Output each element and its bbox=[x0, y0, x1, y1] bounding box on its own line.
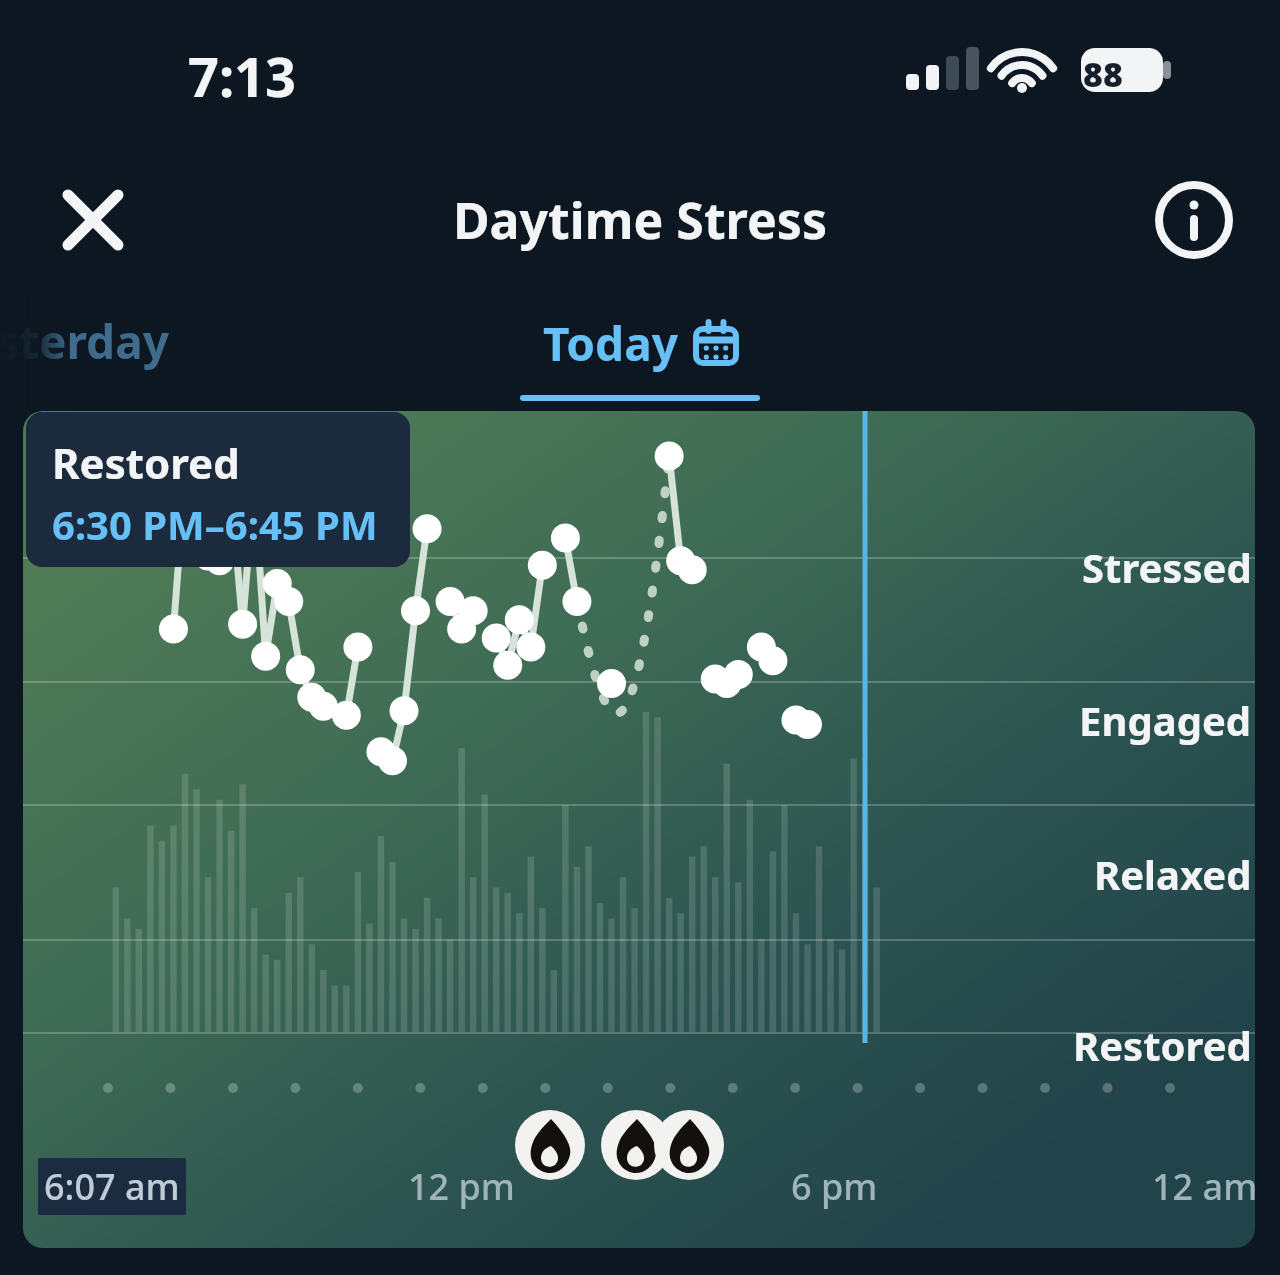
staticText: Today bbox=[543, 312, 678, 375]
staticText: 6:30 PM–6:45 PM bbox=[52, 497, 378, 551]
button[interactable]: Yesterday bbox=[0, 310, 170, 373]
button[interactable] bbox=[23, 411, 1255, 1248]
staticText: 6 pm bbox=[791, 1162, 878, 1211]
button[interactable]: Today bbox=[543, 312, 738, 375]
staticText: Engaged bbox=[1079, 693, 1252, 747]
staticText: Relaxed bbox=[1094, 847, 1252, 901]
staticText: 6:07 am bbox=[44, 1162, 180, 1211]
button[interactable]: Info bbox=[1146, 172, 1242, 268]
button[interactable]: Restored bbox=[26, 412, 410, 567]
button[interactable]: Workout bbox=[654, 1110, 724, 1180]
staticText: 12 pm bbox=[408, 1162, 515, 1211]
staticText: 12 am bbox=[1152, 1162, 1258, 1211]
staticText: Yesterday bbox=[0, 310, 170, 373]
staticText: Restored bbox=[52, 434, 240, 491]
button[interactable]: Close bbox=[48, 175, 138, 265]
staticText: Stressed bbox=[1082, 540, 1252, 594]
staticText: 7:13 bbox=[188, 39, 296, 113]
staticText: Daytime Stress bbox=[453, 186, 827, 254]
button[interactable]: Workout bbox=[515, 1110, 585, 1180]
staticText: 88 bbox=[1083, 51, 1123, 97]
staticText: Restored bbox=[1073, 1018, 1252, 1072]
button[interactable]: Workout bbox=[601, 1110, 671, 1180]
